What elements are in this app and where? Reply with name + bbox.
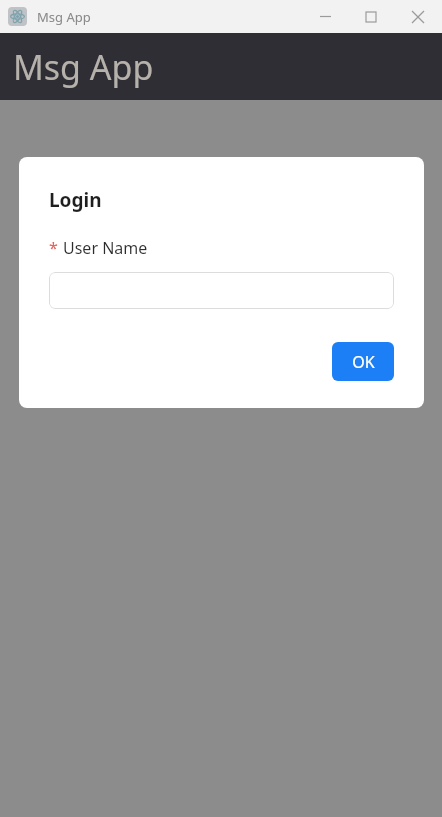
button[interactable] (49, 272, 394, 309)
staticText: * (49, 237, 58, 259)
button[interactable]: Close (394, 0, 442, 33)
button[interactable]: OK (332, 342, 394, 381)
staticText: Msg App (13, 44, 154, 90)
button[interactable]: Minimize (302, 0, 348, 33)
button[interactable]: Maximize (348, 0, 394, 33)
staticText: Msg App (37, 8, 91, 26)
staticText: OK (352, 351, 375, 373)
staticText: Login (49, 187, 102, 213)
staticText: User Name (63, 237, 148, 259)
